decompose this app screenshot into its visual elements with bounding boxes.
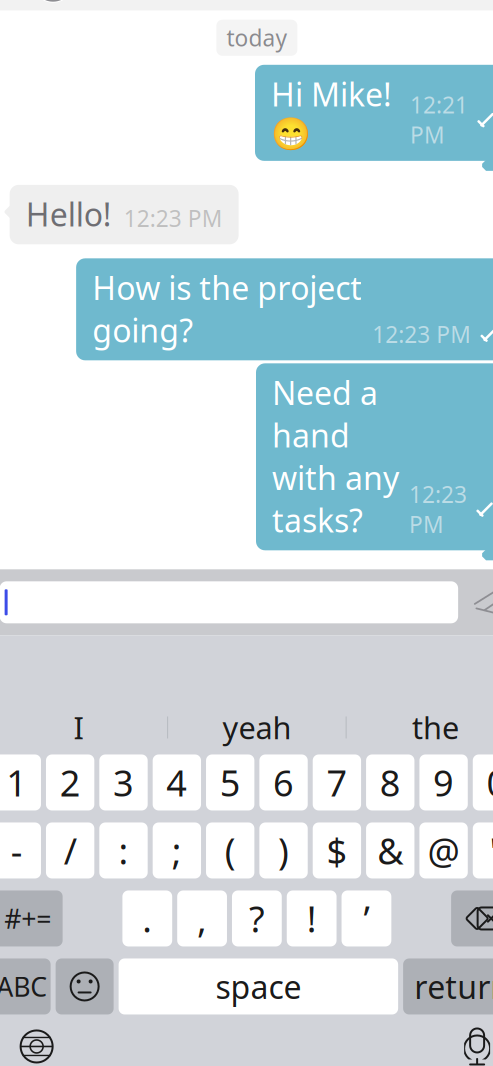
button[interactable]: ; [153,822,201,878]
staticText: today [226,23,287,53]
button[interactable]: 7 [313,754,361,810]
staticText: ? [249,895,265,942]
staticText: 1 [6,759,27,806]
button[interactable]: 4 [153,754,201,810]
button[interactable]: space [119,958,398,1014]
button[interactable]: return [403,958,493,1014]
staticText: 6 [273,759,294,806]
button[interactable] [32,0,230,9]
staticText: 2 [60,759,81,806]
button[interactable]: Send [458,573,493,631]
staticText: ) [278,827,289,874]
button[interactable]: ! [287,890,337,946]
staticText: 7 [326,759,347,806]
staticText: @ [428,827,460,874]
button[interactable]: @ [419,822,468,878]
staticText: Need a hand with any tasks? [272,371,399,541]
staticText: the [412,707,459,748]
button[interactable]: - [0,822,41,878]
button[interactable]: 2 [46,754,94,810]
staticText: I [73,707,83,748]
staticText: $ [326,827,347,874]
button[interactable]: ) [259,822,308,878]
button[interactable]: / [46,822,94,878]
staticText: 3 [113,759,134,806]
staticText: space [215,965,301,1008]
button[interactable]: ( [206,822,254,878]
button[interactable]: 8 [366,754,414,810]
staticText: ! [307,895,317,942]
staticText: 12:23 PM [124,203,223,233]
staticText: ( [225,827,236,874]
staticText: / [64,827,77,874]
staticText: : [118,827,128,874]
staticText: 9 [433,759,454,806]
staticText: & [377,827,403,874]
button[interactable]: 1 [0,754,41,810]
staticText: Hello! [26,193,112,235]
button[interactable]: Done [423,0,493,14]
staticText: 12:21 PM [410,90,468,150]
button[interactable]: I [0,703,167,751]
button[interactable]: & [366,822,414,878]
button[interactable]: the [347,703,493,751]
staticText: 5 [220,759,241,806]
staticText: How is the project going? [92,266,362,351]
staticText: " [489,827,493,874]
staticText: Hi Mike! 😁 [271,73,400,152]
button[interactable]: #+= [0,890,63,946]
staticText: 12:23 PM [372,319,471,349]
staticText: ; [172,827,182,874]
staticText: - [11,827,23,874]
button[interactable]: ? [232,890,282,946]
button[interactable]: " [473,822,493,878]
button[interactable]: Change keyboard [6,1018,68,1066]
staticText: #+= [4,901,51,936]
button[interactable]: $ [313,822,361,878]
button[interactable] [0,581,458,623]
button[interactable]: 6 [259,754,308,810]
button[interactable]: 3 [99,754,148,810]
button[interactable]: Dictation [446,1018,493,1066]
button[interactable]: , [177,890,227,946]
staticText: 12:23 PM [409,479,467,539]
button[interactable]: 9 [419,754,468,810]
button[interactable]: . [122,890,172,946]
staticText: ’ [363,895,369,942]
button[interactable]: Delete [451,890,493,946]
staticText: , [197,895,207,942]
button[interactable]: ABC [0,958,51,1014]
button[interactable]: 0 [473,754,493,810]
staticText: ABC [0,969,47,1004]
staticText: return [414,965,493,1008]
staticText: 0 [486,759,493,806]
button[interactable]: ’ [342,890,391,946]
button[interactable]: : [99,822,148,878]
button[interactable]: 5 [206,754,254,810]
button[interactable]: yeah [168,703,346,751]
button[interactable]: Emoji [56,958,114,1014]
staticText: 8 [380,759,401,806]
staticText: 4 [166,759,187,806]
staticText: yeah [222,707,291,748]
staticText: . [142,895,152,942]
